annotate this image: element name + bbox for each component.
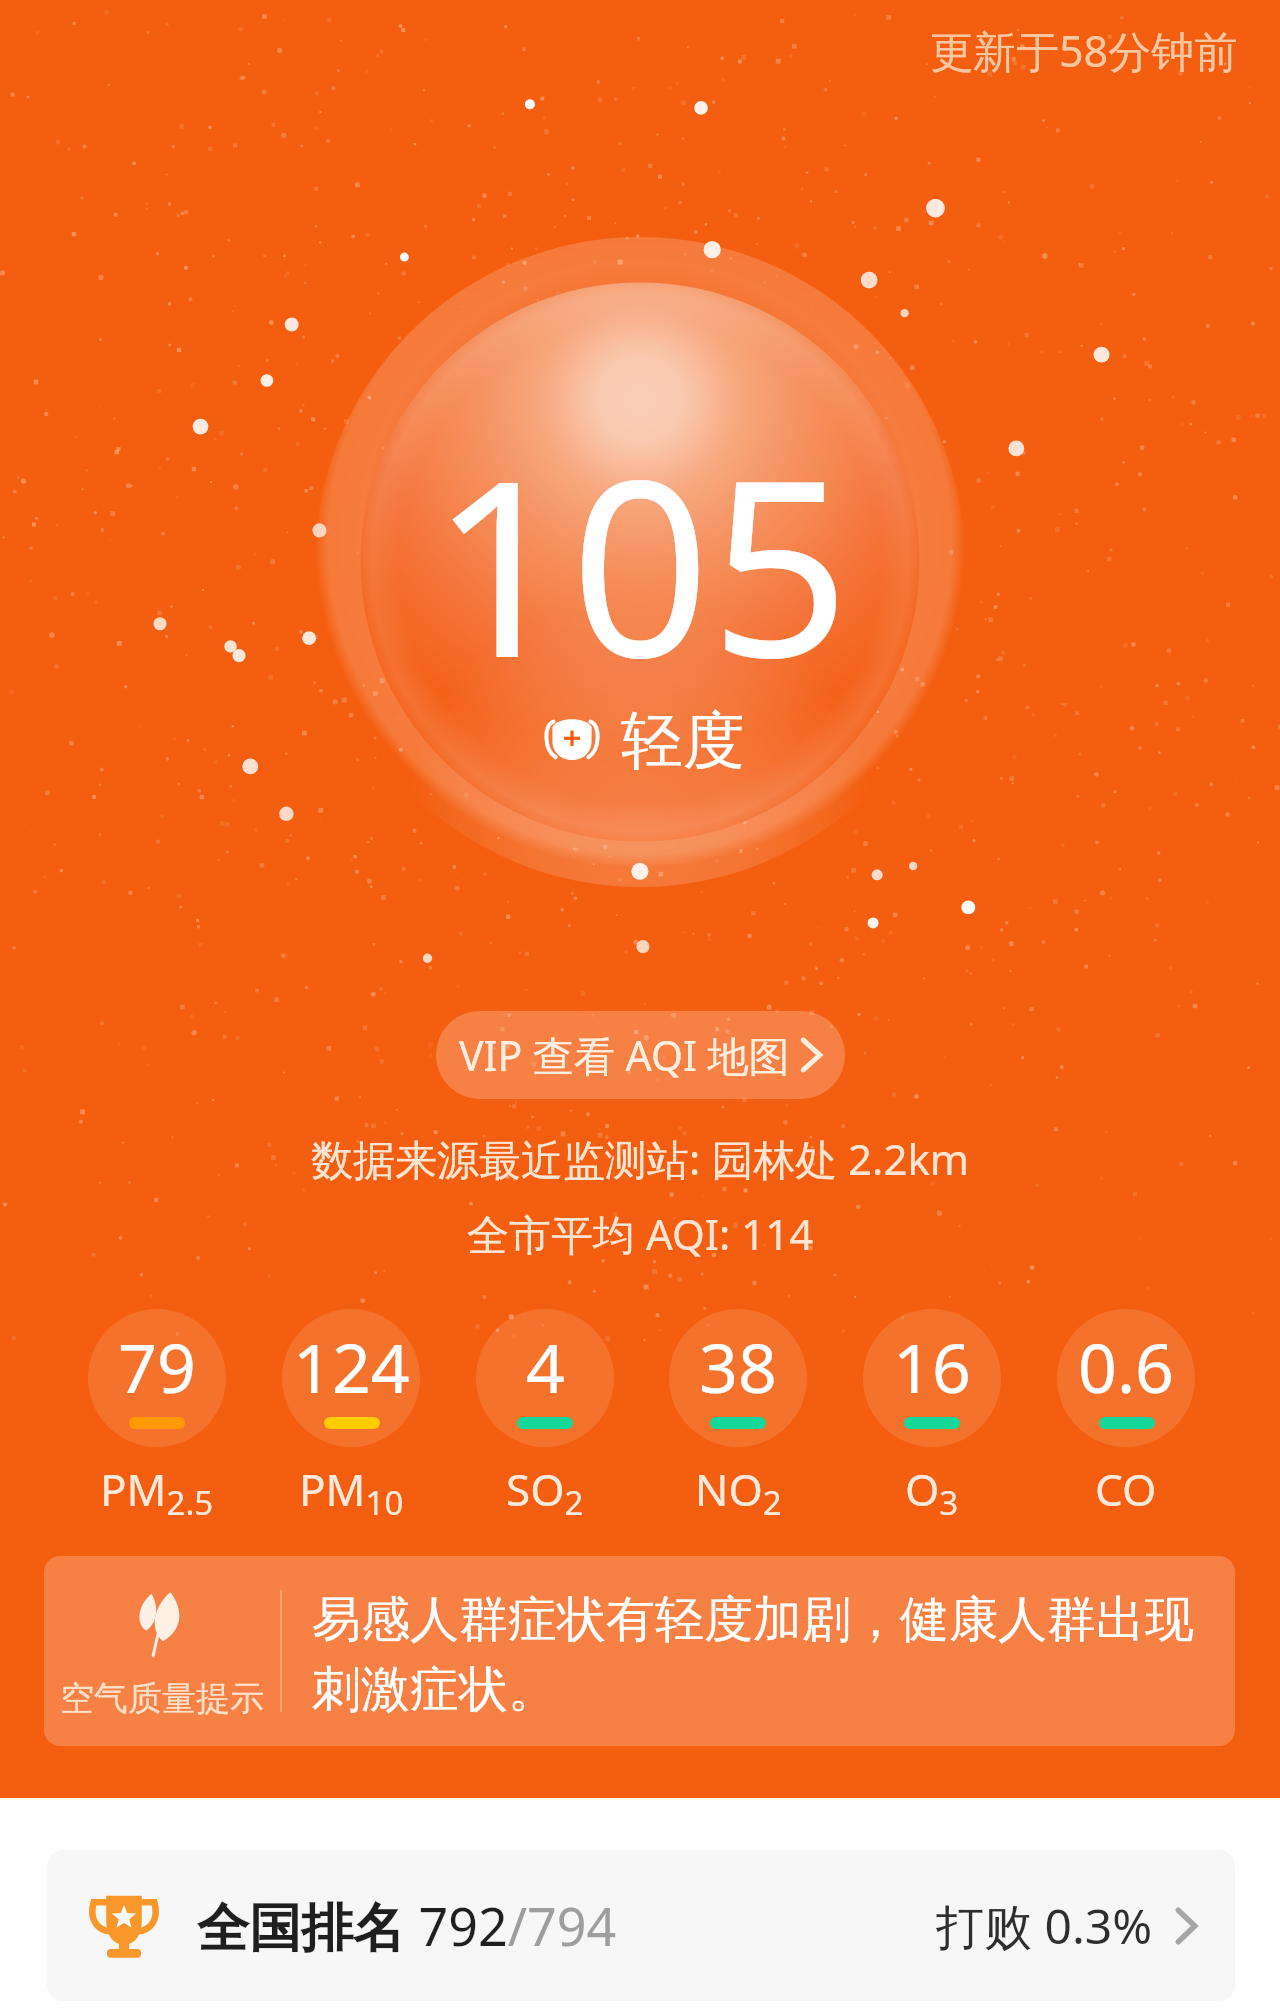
staticText: 0.6: [1078, 1320, 1175, 1413]
other: 空气质量提示: [136, 1591, 188, 1657]
button[interactable]: 0.6: [1029, 1309, 1223, 1539]
button[interactable]: VIP 查看 AQI 地图: [436, 1011, 845, 1099]
staticText: PM2.5: [100, 1459, 214, 1524]
staticText: CO: [1095, 1459, 1157, 1519]
button[interactable]: 空气质量提示: [44, 1556, 1235, 1746]
staticText: PM10: [299, 1459, 404, 1524]
staticText: VIP 查看 AQI 地图: [459, 1027, 790, 1083]
staticText: 打败 0.3%: [936, 1893, 1153, 1959]
staticText: SO2: [506, 1459, 584, 1524]
staticText: 4: [526, 1320, 565, 1413]
staticText: 全市平均 AQI: 114: [467, 1205, 814, 1262]
staticText: NO2: [695, 1459, 782, 1524]
staticText: 16: [893, 1320, 971, 1413]
staticText: 轻度: [621, 702, 745, 780]
button[interactable]: 79: [60, 1309, 254, 1539]
button[interactable]: 全国排名: [47, 1850, 1235, 2001]
staticText: 105: [431, 396, 850, 728]
staticText: 易感人群症状有轻度加剧，健康人群出现 刺激症状。: [312, 1589, 1194, 1721]
staticText: 数据来源最近监测站: 园林处 2.2km: [311, 1130, 970, 1187]
staticText: 全国排名 792/794: [197, 1890, 617, 1961]
button[interactable]: 124: [254, 1309, 448, 1539]
button[interactable]: 38: [641, 1309, 835, 1539]
button[interactable]: 4: [448, 1309, 642, 1539]
staticText: 38: [699, 1320, 777, 1413]
staticText: 更新于58分钟前: [930, 21, 1238, 80]
other: 全国排名: [87, 1893, 161, 1959]
staticText: O3: [905, 1459, 959, 1524]
button[interactable]: 16: [835, 1309, 1029, 1539]
staticText: 79: [118, 1320, 196, 1413]
other: 口罩: [537, 714, 607, 768]
staticText: 空气质量提示: [60, 1677, 264, 1720]
staticText: 124: [293, 1320, 410, 1413]
